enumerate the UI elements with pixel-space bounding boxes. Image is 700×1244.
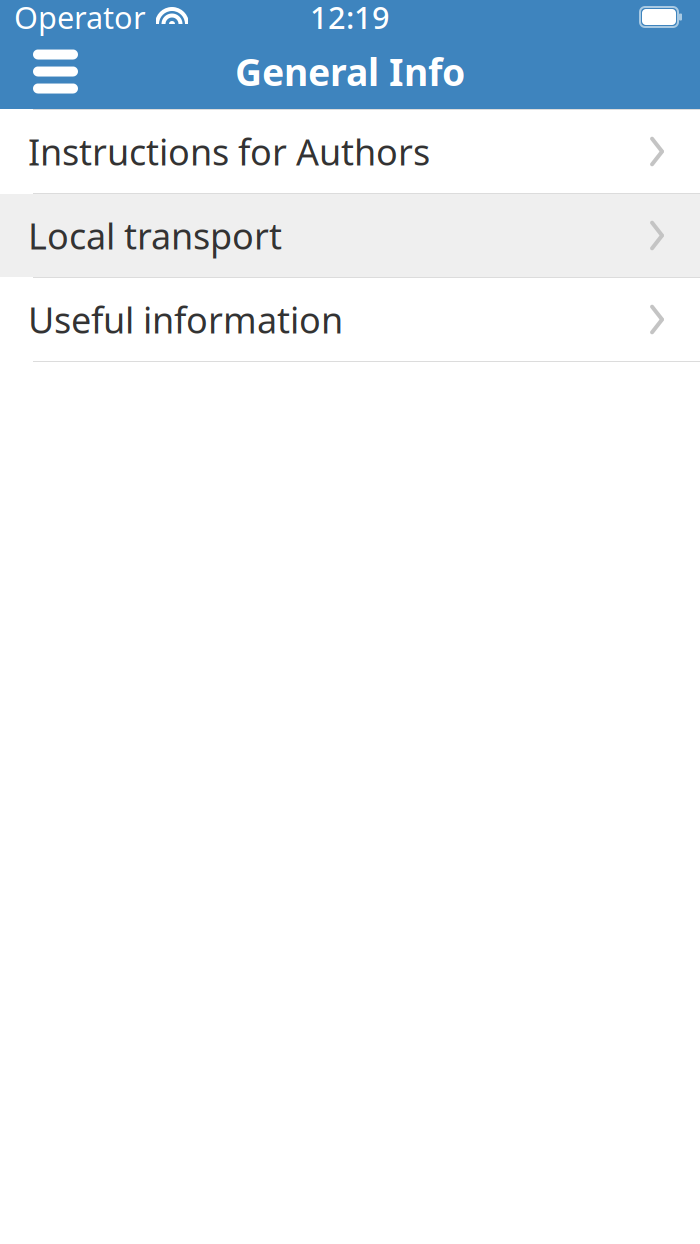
staticText: 12:19 (310, 0, 390, 37)
staticText: Local transport (28, 212, 282, 259)
staticText: Operator (14, 0, 146, 37)
staticText: Instructions for Authors (28, 128, 430, 175)
button[interactable]: Local transport (0, 194, 700, 277)
button[interactable]: Instructions for Authors (0, 110, 700, 193)
staticText: Useful information (28, 296, 343, 343)
button[interactable]: Menu (21, 39, 90, 103)
button[interactable]: Useful information (0, 278, 700, 361)
staticText: General Info (235, 47, 465, 96)
